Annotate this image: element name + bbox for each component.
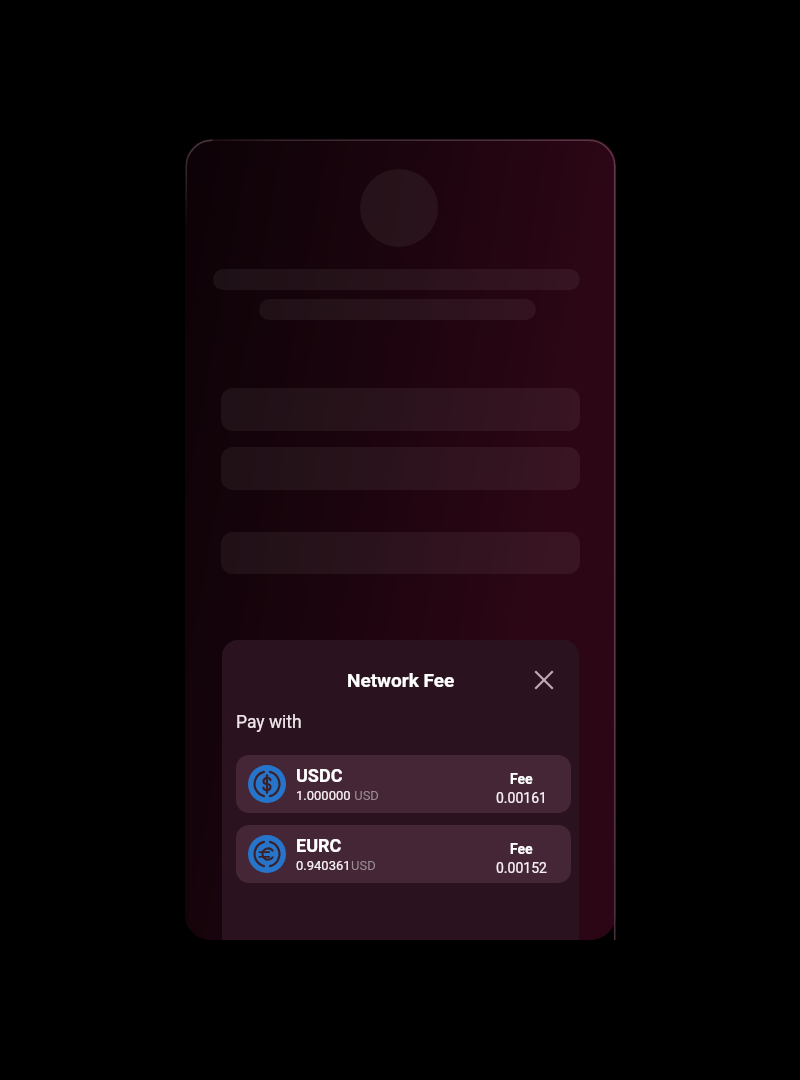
button[interactable]: USDC (236, 755, 571, 813)
staticText: 1.000000 (296, 788, 351, 803)
staticText: EURC (296, 835, 342, 856)
button[interactable]: Close (522, 658, 566, 702)
staticText: USD (351, 858, 376, 873)
staticText: Pay with (236, 712, 302, 733)
staticText: USD (351, 788, 379, 803)
staticText: Fee (510, 771, 533, 787)
staticText: 0.00152 (496, 860, 547, 876)
staticText: 0.940361 (296, 858, 351, 873)
staticText: USDC (296, 765, 343, 786)
staticText: Fee (510, 841, 533, 857)
button[interactable]: EURC (236, 825, 571, 883)
staticText: Network Fee (347, 669, 455, 691)
staticText: 0.00161 (496, 790, 547, 806)
